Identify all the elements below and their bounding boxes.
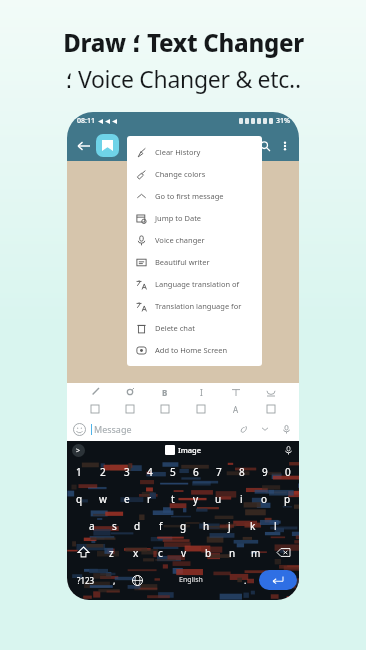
button[interactable]: img: [88, 402, 102, 416]
staticText: Draw ؛ Text Changer: [63, 26, 304, 59]
button[interactable]: Clear History: [127, 141, 262, 163]
staticText: z: [109, 546, 114, 560]
button[interactable]: 0: [276, 459, 299, 485]
button[interactable]: Voice message: [280, 423, 293, 436]
button[interactable]: Delete chat: [127, 317, 262, 339]
button[interactable]: r: [138, 485, 161, 512]
button[interactable]: 3: [115, 459, 138, 485]
staticText: v: [181, 546, 187, 560]
button[interactable]: a: [80, 512, 103, 539]
button[interactable]: Add to Home Screen: [127, 339, 262, 361]
staticText: l: [274, 519, 277, 533]
button[interactable]: x: [124, 539, 148, 566]
button[interactable]: m: [244, 539, 268, 566]
button[interactable]: I: [194, 385, 208, 399]
staticText: 7: [216, 465, 222, 479]
button[interactable]: t: [161, 485, 184, 512]
button[interactable]: k: [241, 512, 264, 539]
button[interactable]: z: [99, 539, 124, 566]
button[interactable]: Expand toolbar: [72, 444, 85, 457]
button[interactable]: q: [67, 485, 91, 512]
button[interactable]: Jump to Date: [127, 207, 262, 229]
button[interactable]: 2: [91, 459, 115, 485]
button[interactable]: Attach: [237, 423, 250, 436]
staticText: y: [193, 492, 199, 506]
button[interactable]: copy: [123, 402, 137, 416]
button[interactable]: Space: [149, 566, 233, 594]
button[interactable]: c: [148, 539, 172, 566]
button[interactable]: n: [220, 539, 244, 566]
button[interactable]: g: [172, 512, 195, 539]
button[interactable]: d: [126, 512, 149, 539]
button[interactable]: Back: [73, 135, 95, 157]
staticText: Clear History: [155, 147, 201, 157]
staticText: r: [147, 492, 152, 506]
button[interactable]: e: [115, 485, 138, 512]
staticText: Add to Home Screen: [155, 345, 228, 355]
button[interactable]: s: [103, 512, 126, 539]
button[interactable]: mic: [264, 402, 278, 416]
button[interactable]: Backspace: [268, 539, 299, 566]
button[interactable]: Period: [233, 566, 257, 594]
button[interactable]: Go to first message: [127, 185, 262, 207]
button[interactable]: 4: [138, 459, 161, 485]
staticText: 31%: [276, 116, 290, 126]
button[interactable]: Search: [255, 136, 275, 156]
button[interactable]: l: [264, 512, 287, 539]
button[interactable]: Change colors: [127, 163, 262, 185]
staticText: ,: [113, 574, 116, 586]
button[interactable]: Expand: [259, 423, 271, 435]
button[interactable]: y: [184, 485, 207, 512]
button[interactable]: h: [195, 512, 218, 539]
button[interactable]: Voice input: [283, 445, 294, 456]
button[interactable]: link: [194, 402, 208, 416]
staticText: c: [158, 546, 163, 560]
staticText: Change colors: [155, 169, 206, 179]
staticText: 5: [170, 465, 176, 479]
staticText: 1: [76, 465, 82, 479]
button[interactable]: 9: [253, 459, 276, 485]
button[interactable]: Saved messages: [96, 134, 119, 157]
staticText: Voice changer: [155, 235, 205, 245]
button[interactable]: Change language: [125, 566, 149, 594]
button[interactable]: A: [229, 402, 243, 416]
button[interactable]: pen: [88, 385, 102, 399]
staticText: f: [159, 519, 163, 533]
button[interactable]: i: [230, 485, 253, 512]
staticText: 08:11: [77, 116, 95, 126]
button[interactable]: clip: [158, 402, 172, 416]
button[interactable]: ?123: [67, 566, 104, 594]
button[interactable]: Emoji: [73, 423, 86, 436]
button[interactable]: f: [149, 512, 172, 539]
button[interactable]: v: [172, 539, 196, 566]
button[interactable]: o: [253, 485, 276, 512]
button[interactable]: Voice changer: [127, 229, 262, 251]
button[interactable]: 6: [184, 459, 207, 485]
button[interactable]: b: [196, 539, 220, 566]
button[interactable]: 7: [207, 459, 230, 485]
button[interactable]: j: [218, 512, 241, 539]
staticText: ?123: [77, 575, 95, 586]
button[interactable]: p: [276, 485, 299, 512]
button[interactable]: Language translation of mess..: [127, 273, 262, 295]
staticText: Image: [178, 445, 202, 455]
button[interactable]: Translation language for sendi..: [127, 295, 262, 317]
button[interactable]: 1: [67, 459, 91, 485]
staticText: ؛ Voice Changer & etc..: [65, 63, 301, 94]
staticText: Message: [94, 423, 132, 435]
button[interactable]: More options: [276, 137, 294, 155]
button[interactable]: U: [264, 385, 278, 399]
staticText: English: [179, 575, 203, 585]
button[interactable]: w: [91, 485, 115, 512]
button[interactable]: Enter: [259, 570, 297, 590]
button[interactable]: 8: [230, 459, 253, 485]
button[interactable]: u: [207, 485, 230, 512]
button[interactable]: 5: [161, 459, 184, 485]
button[interactable]: Shift: [67, 539, 99, 566]
button[interactable]: S: [229, 385, 243, 399]
button[interactable]: B: [158, 385, 172, 399]
button[interactable]: Comma: [104, 566, 125, 594]
staticText: 4: [147, 465, 153, 479]
button[interactable]: Beautiful writer: [127, 251, 262, 273]
button[interactable]: eye: [123, 385, 137, 399]
